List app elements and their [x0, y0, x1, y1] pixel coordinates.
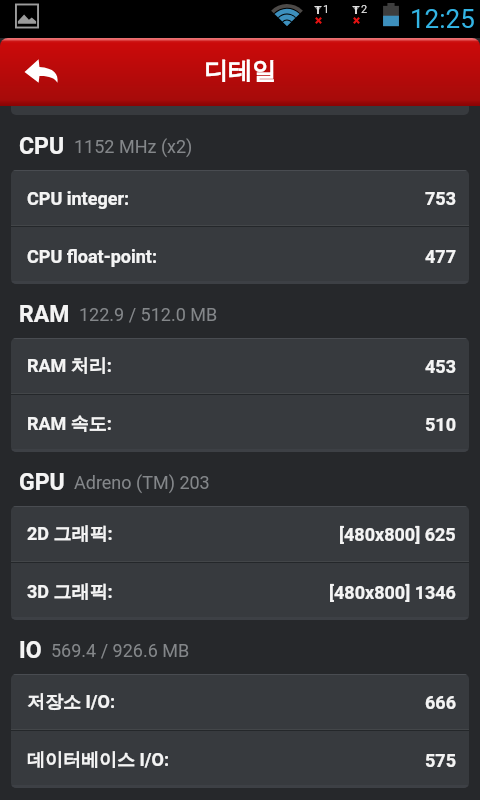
- staticText: CPU: [19, 133, 65, 160]
- staticText: 122.9 / 512.0 MB: [79, 304, 218, 325]
- staticText: GPU: [19, 469, 65, 496]
- staticText: IO: [19, 637, 42, 664]
- staticText: [480x800] 625: [339, 524, 456, 545]
- staticText: 569.4 / 926.6 MB: [51, 640, 190, 661]
- staticText: Adreno (TM) 203: [74, 472, 210, 493]
- staticText: 753: [425, 188, 456, 209]
- button[interactable]: 2D 그래픽:: [11, 507, 469, 561]
- staticText: 477: [425, 246, 456, 267]
- staticText: 575: [425, 750, 456, 771]
- button[interactable]: RAM 속도:: [11, 395, 469, 452]
- staticText: CPU float-point:: [27, 246, 157, 267]
- staticText: 12:25: [410, 4, 475, 34]
- staticText: CPU integer:: [27, 188, 130, 209]
- staticText: 디테일: [204, 56, 276, 86]
- button[interactable]: 저장소 I/O:: [11, 675, 469, 729]
- staticText: [480x800] 1346: [329, 582, 456, 603]
- staticText: 510: [425, 414, 456, 435]
- staticText: 2D 그래픽:: [27, 523, 113, 546]
- staticText: 3D 그래픽:: [27, 581, 113, 604]
- staticText: RAM 처리:: [27, 355, 112, 378]
- button[interactable]: Back: [13, 44, 69, 100]
- staticText: 데이터베이스 I/O:: [27, 749, 169, 772]
- button[interactable]: RAM 처리:: [11, 339, 469, 393]
- staticText: 666: [425, 692, 456, 713]
- button[interactable]: 데이터베이스 I/O:: [11, 731, 469, 788]
- staticText: RAM 속도:: [27, 413, 112, 436]
- staticText: RAM: [19, 301, 70, 328]
- button[interactable]: CPU float-point:: [11, 227, 469, 284]
- staticText: 1152 MHz (x2): [74, 136, 193, 157]
- staticText: 1: [323, 3, 330, 16]
- staticText: 저장소 I/O:: [27, 691, 115, 714]
- button[interactable]: CPU integer:: [11, 171, 469, 225]
- staticText: 2: [361, 3, 368, 16]
- button[interactable]: 3D 그래픽:: [11, 563, 469, 620]
- staticText: 453: [425, 356, 456, 377]
